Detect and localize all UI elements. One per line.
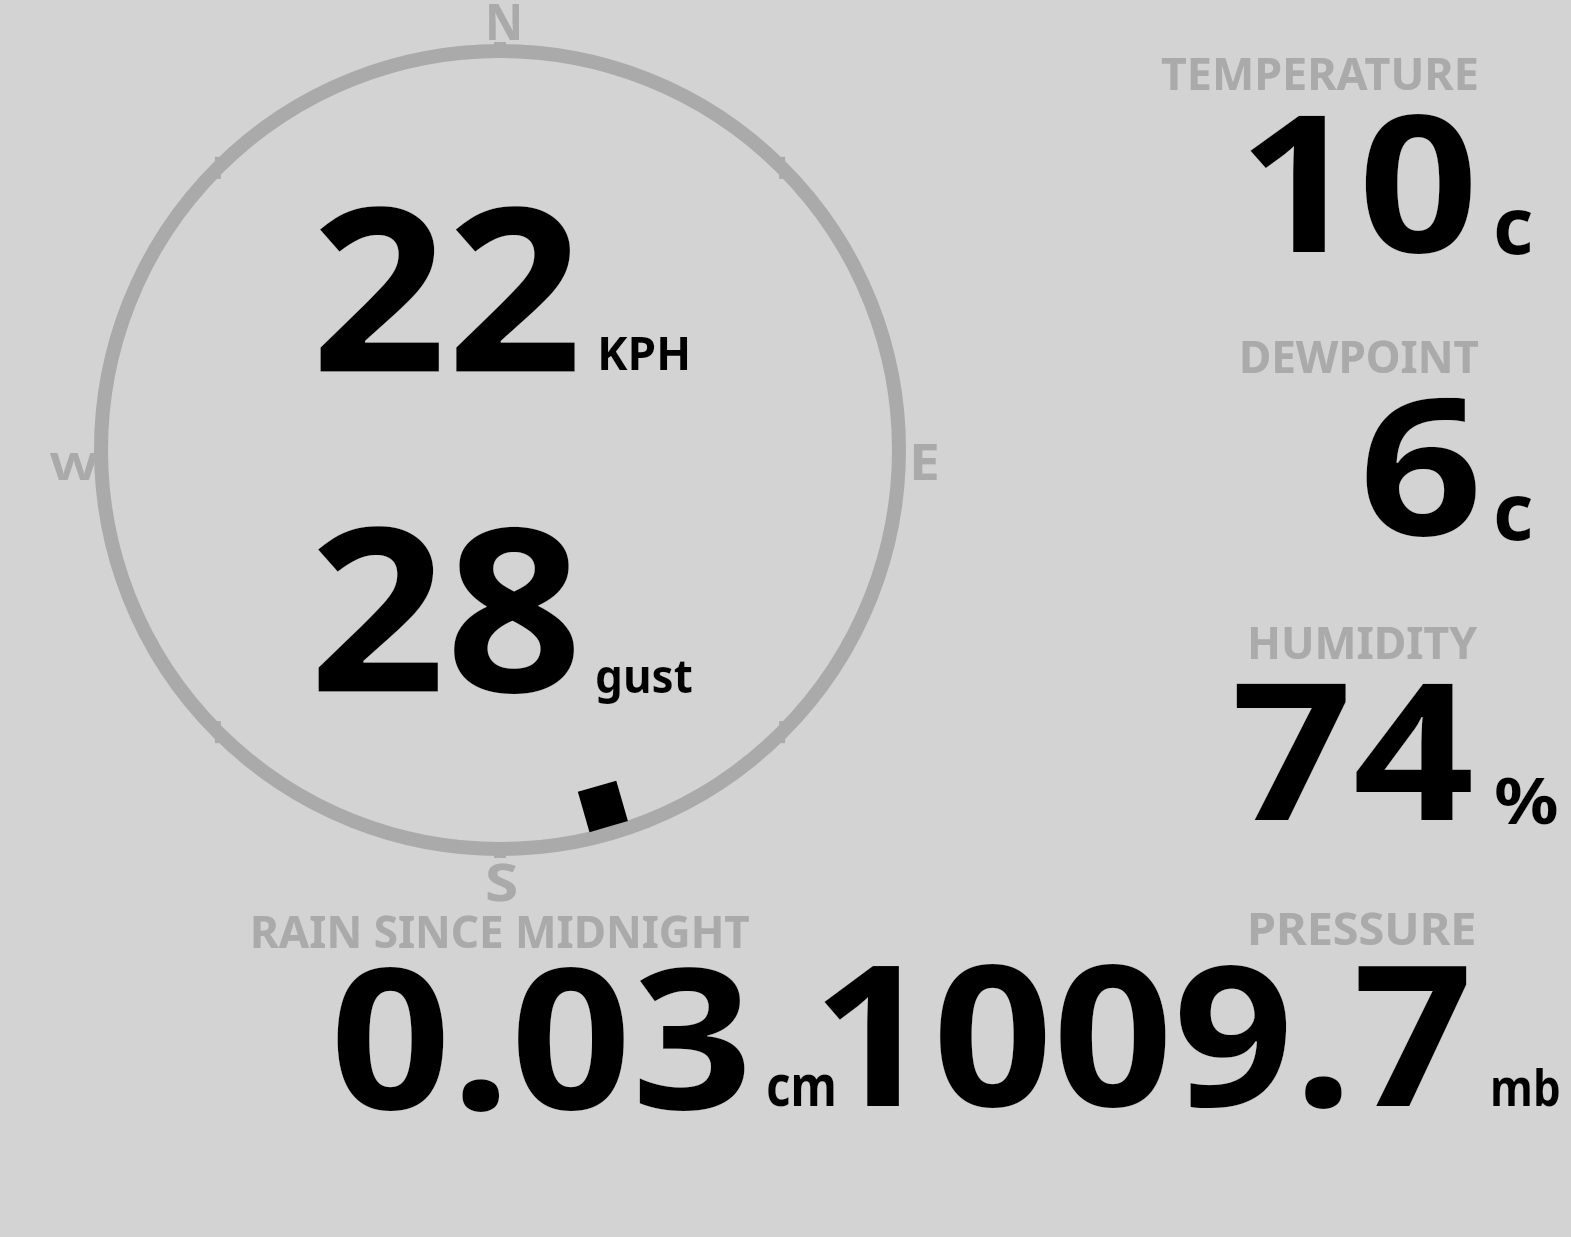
button[interactable]: Wind 22 KPH, gust 28, direction south so… (95, 45, 905, 855)
button[interactable]: Temperature 10 degrees Celsius (1140, 40, 1571, 270)
button[interactable]: Pressure 1009.7 mb (855, 900, 1565, 1125)
button[interactable]: Dewpoint 6 degrees Celsius (1140, 320, 1571, 550)
button[interactable]: Humidity 74 percent (1140, 605, 1571, 835)
button[interactable]: Rain since midnight 0.03 cm (240, 900, 850, 1125)
